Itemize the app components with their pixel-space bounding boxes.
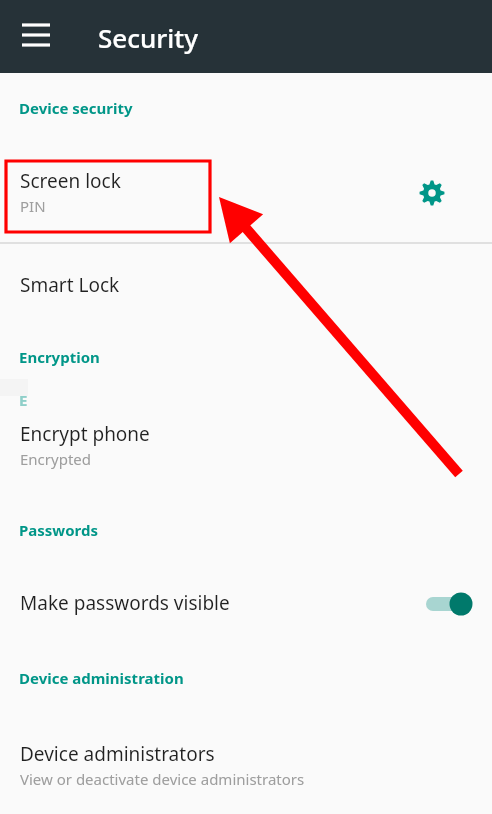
button[interactable]: Make passwords visible toggle <box>418 582 480 626</box>
button[interactable]: Screen lock settings <box>408 169 456 217</box>
staticText: Smart Lock <box>20 272 120 298</box>
button[interactable]: Smart Lock <box>0 255 492 317</box>
staticText: Make passwords visible <box>20 590 230 616</box>
staticText: View or deactivate device administrators <box>20 769 305 789</box>
staticText: Passwords <box>19 520 98 540</box>
staticText: Device administration <box>19 668 184 688</box>
staticText: Device administrators <box>20 741 215 767</box>
staticText: PIN <box>20 196 46 216</box>
button[interactable]: Encrypt phone <box>0 412 492 488</box>
staticText: Screen lock <box>20 168 121 194</box>
button[interactable]: Device administrators <box>0 732 492 810</box>
staticText: Encryption <box>19 347 100 367</box>
staticText: Device security <box>19 98 133 118</box>
staticText: Encrypted <box>20 449 91 469</box>
button[interactable]: Screen lock <box>0 152 492 242</box>
button[interactable]: Make passwords visible <box>0 573 492 635</box>
staticText: Security <box>98 20 198 55</box>
staticText: E <box>19 390 28 410</box>
button[interactable]: Open navigation drawer <box>12 14 60 62</box>
staticText: Encrypt phone <box>20 421 150 447</box>
